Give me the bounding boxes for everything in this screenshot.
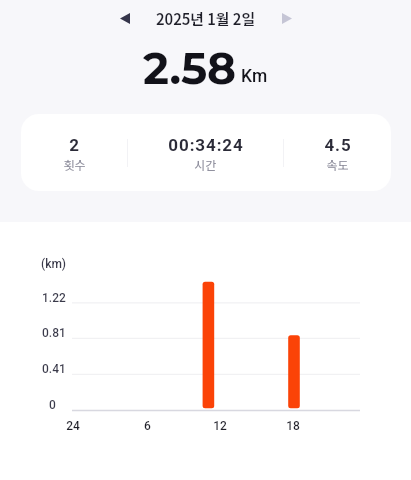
staticText: 2.58 [143,41,237,85]
button[interactable]: 4.5 [284,114,391,191]
staticText: 12 [213,419,227,433]
staticText: 속도 [326,156,349,173]
button[interactable]: Next day [273,4,301,32]
staticText: 횟수 [63,156,86,173]
staticText: Km [241,66,268,87]
staticText: 4.5 [324,135,352,155]
staticText: 0.81 [42,326,66,340]
staticText: 6 [144,419,151,433]
staticText: 24 [66,419,80,433]
staticText: (km) [41,257,67,271]
button[interactable]: Previous day [111,4,139,32]
staticText: 00:34:24 [168,135,244,155]
staticText: 0.41 [42,362,66,376]
staticText: 시간 [194,156,217,173]
staticText: 2 [69,135,80,155]
staticText: 0 [49,398,56,412]
staticText: 1.22 [42,291,66,305]
staticText: 2025년 1월 2일 [156,8,256,29]
button[interactable]: 2 [21,114,127,191]
button[interactable]: 00:34:24 [128,114,283,191]
staticText: 18 [286,419,300,433]
